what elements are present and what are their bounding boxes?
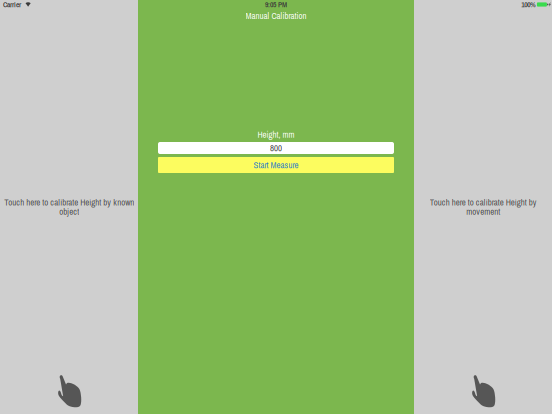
staticText: Manual Calibration xyxy=(245,10,306,22)
staticText: 800 xyxy=(270,142,282,154)
staticText: Touch here to calibrate Height by known … xyxy=(4,196,134,218)
staticText: Touch here to calibrate Height by moveme… xyxy=(429,196,536,218)
button[interactable]: Height, mm xyxy=(158,142,394,154)
button[interactable]: Start Measure xyxy=(158,157,394,173)
staticText: Start Measure xyxy=(253,159,298,171)
staticText: Carrier xyxy=(3,0,21,10)
button[interactable]: Calibrate height by movement xyxy=(414,0,552,414)
staticText: Height, mm xyxy=(257,129,294,140)
staticText: 9:05 PM xyxy=(265,0,287,10)
staticText: 100% xyxy=(521,0,535,10)
button[interactable]: Calibrate height by known object xyxy=(0,0,138,414)
